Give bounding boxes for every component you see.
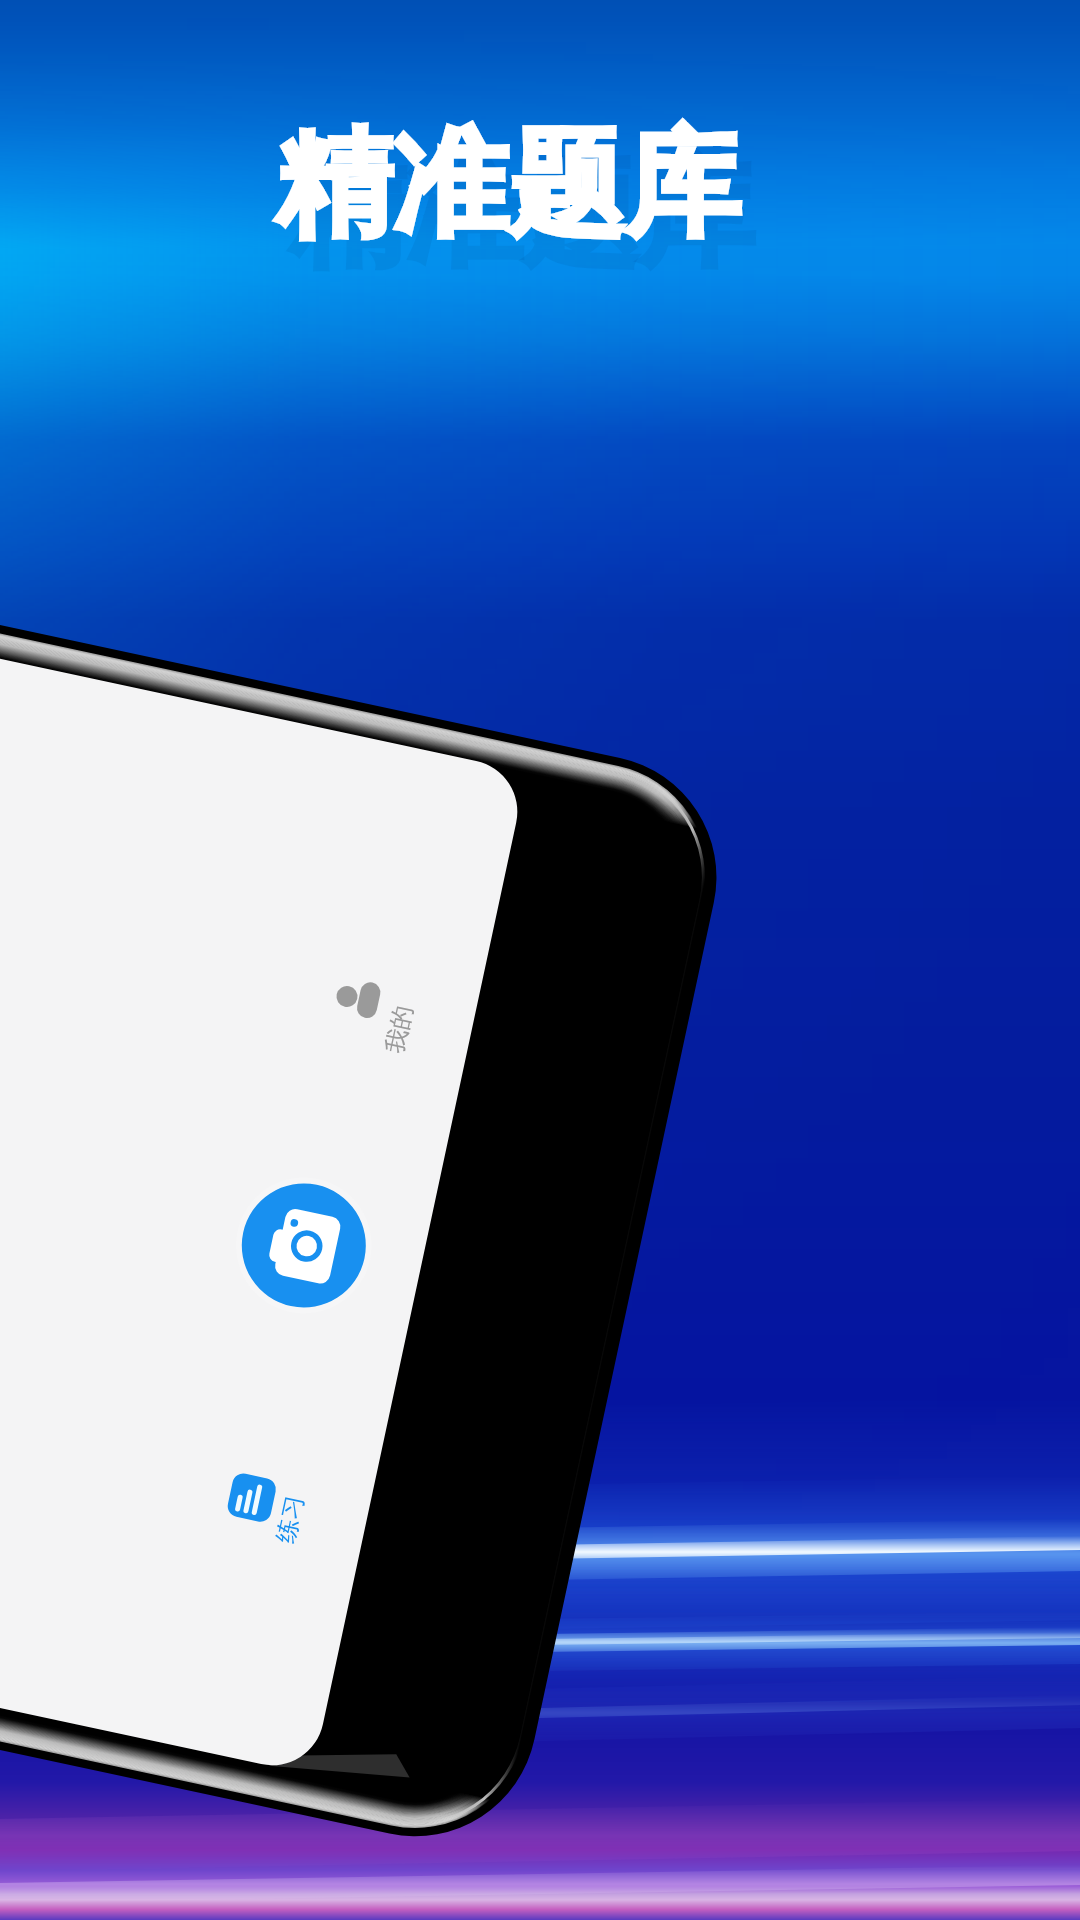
button[interactable]: 扫描拍照 [229,1170,379,1320]
button[interactable]: 我的 [310,924,418,1074]
button[interactable]: 练习 [198,1423,306,1573]
